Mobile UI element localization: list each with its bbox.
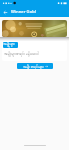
button[interactable]: Back [0, 7, 10, 17]
staticText: Winner Gold [11, 9, 36, 15]
button[interactable]: အမျိုးများစာရင်း [3, 42, 18, 48]
staticText: အမျိုးများစာရင်း မရှိသေးပါ [4, 51, 39, 57]
staticText: အမျိုးများစာရင်း [3, 42, 18, 48]
button[interactable]: အမျိုး စာရင်းများ [17, 63, 53, 69]
staticText: အမျိုး စာရင်းများ [23, 64, 44, 69]
